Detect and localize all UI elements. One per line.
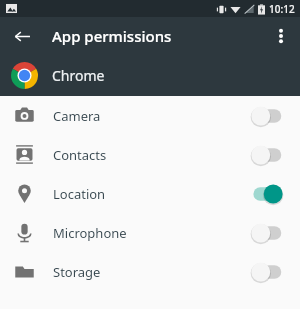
button[interactable]: Storage <box>0 252 300 291</box>
staticText: 10:12 <box>269 2 295 16</box>
button[interactable]: Off <box>250 222 284 244</box>
button[interactable]: More options <box>266 21 296 51</box>
staticText: Camera <box>53 107 101 125</box>
button[interactable]: Off <box>250 144 284 166</box>
staticText: Contacts <box>53 146 107 164</box>
button[interactable]: Chrome <box>0 55 300 96</box>
button[interactable]: Back <box>6 20 38 52</box>
staticText: Chrome <box>52 66 105 85</box>
staticText: App permissions <box>52 26 172 46</box>
button[interactable]: Contacts <box>0 135 300 174</box>
staticText: Microphone <box>53 224 127 242</box>
button[interactable]: Microphone <box>0 213 300 252</box>
button[interactable]: On <box>250 183 284 205</box>
staticText: Location <box>53 185 106 203</box>
staticText: Storage <box>53 263 101 281</box>
button[interactable]: Off <box>250 105 284 127</box>
button[interactable]: Location <box>0 174 300 213</box>
button[interactable]: Camera <box>0 96 300 135</box>
button[interactable]: Off <box>250 261 284 283</box>
